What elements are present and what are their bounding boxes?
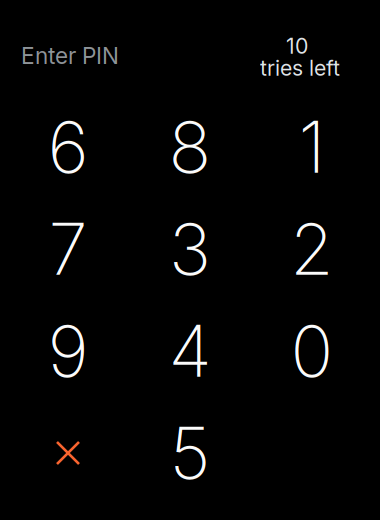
button[interactable]: 3: [129, 198, 251, 300]
button[interactable]: 1: [251, 96, 373, 198]
staticText: 0: [290, 308, 333, 394]
button[interactable]: 7: [7, 198, 129, 300]
button[interactable]: 4: [129, 300, 251, 402]
staticText: 5: [169, 410, 210, 496]
staticText: 6: [47, 104, 88, 190]
staticText: 2: [290, 206, 334, 292]
staticText: 7: [48, 206, 87, 292]
button[interactable]: Delete: [7, 402, 129, 504]
staticText: 1: [298, 104, 325, 190]
staticText: 3: [169, 206, 211, 292]
staticText: tries left: [260, 55, 340, 81]
button[interactable]: 8: [129, 96, 251, 198]
staticText: Enter PIN: [21, 42, 119, 69]
button[interactable]: 9: [7, 300, 129, 402]
button[interactable]: 0: [251, 300, 373, 402]
button[interactable]: 5: [129, 402, 251, 504]
staticText: 9: [47, 308, 88, 394]
button[interactable]: 6: [7, 96, 129, 198]
staticText: 10: [286, 33, 308, 59]
staticText: 4: [168, 308, 211, 394]
staticText: 8: [168, 104, 211, 190]
button[interactable]: 2: [251, 198, 373, 300]
